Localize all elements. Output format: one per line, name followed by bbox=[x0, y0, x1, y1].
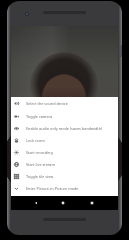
button[interactable]: Start recording bbox=[11, 146, 118, 158]
button[interactable]: Recents bbox=[86, 197, 98, 209]
button[interactable]: Select the sound device bbox=[11, 97, 118, 109]
staticText: Select the sound device bbox=[26, 101, 68, 106]
button[interactable]: Lock room bbox=[11, 134, 118, 146]
button[interactable]: Enter Picture-in-Picture mode bbox=[11, 182, 118, 194]
staticText: Enable audio only mode (saves bandwidth) bbox=[26, 126, 103, 131]
staticText: Lock room bbox=[26, 138, 45, 143]
staticText: Toggle tile view bbox=[26, 174, 54, 179]
staticText: Start recording bbox=[26, 150, 53, 155]
staticText: Start live stream bbox=[26, 162, 56, 167]
staticText: Toggle camera bbox=[26, 114, 53, 119]
staticText: Enter Picture-in-Picture mode bbox=[26, 186, 79, 191]
button[interactable]: Enable audio only mode (saves bandwidth) bbox=[11, 122, 118, 134]
button[interactable]: Back bbox=[30, 197, 42, 209]
button[interactable]: Toggle camera bbox=[11, 110, 118, 122]
button[interactable]: Start live stream bbox=[11, 158, 118, 170]
button[interactable]: Home bbox=[57, 197, 69, 209]
button[interactable]: Toggle tile view bbox=[11, 170, 118, 182]
